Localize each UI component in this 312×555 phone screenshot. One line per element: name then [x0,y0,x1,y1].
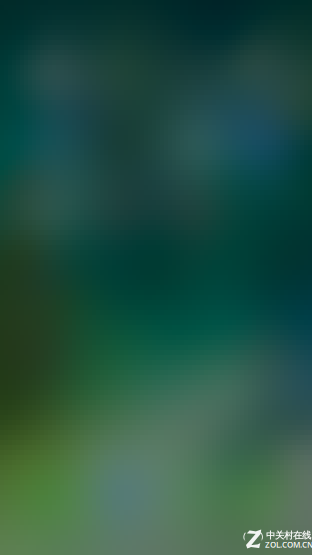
staticText: ZOL.COM.CN [265,539,312,550]
staticText: 中关村在线 [266,530,311,541]
